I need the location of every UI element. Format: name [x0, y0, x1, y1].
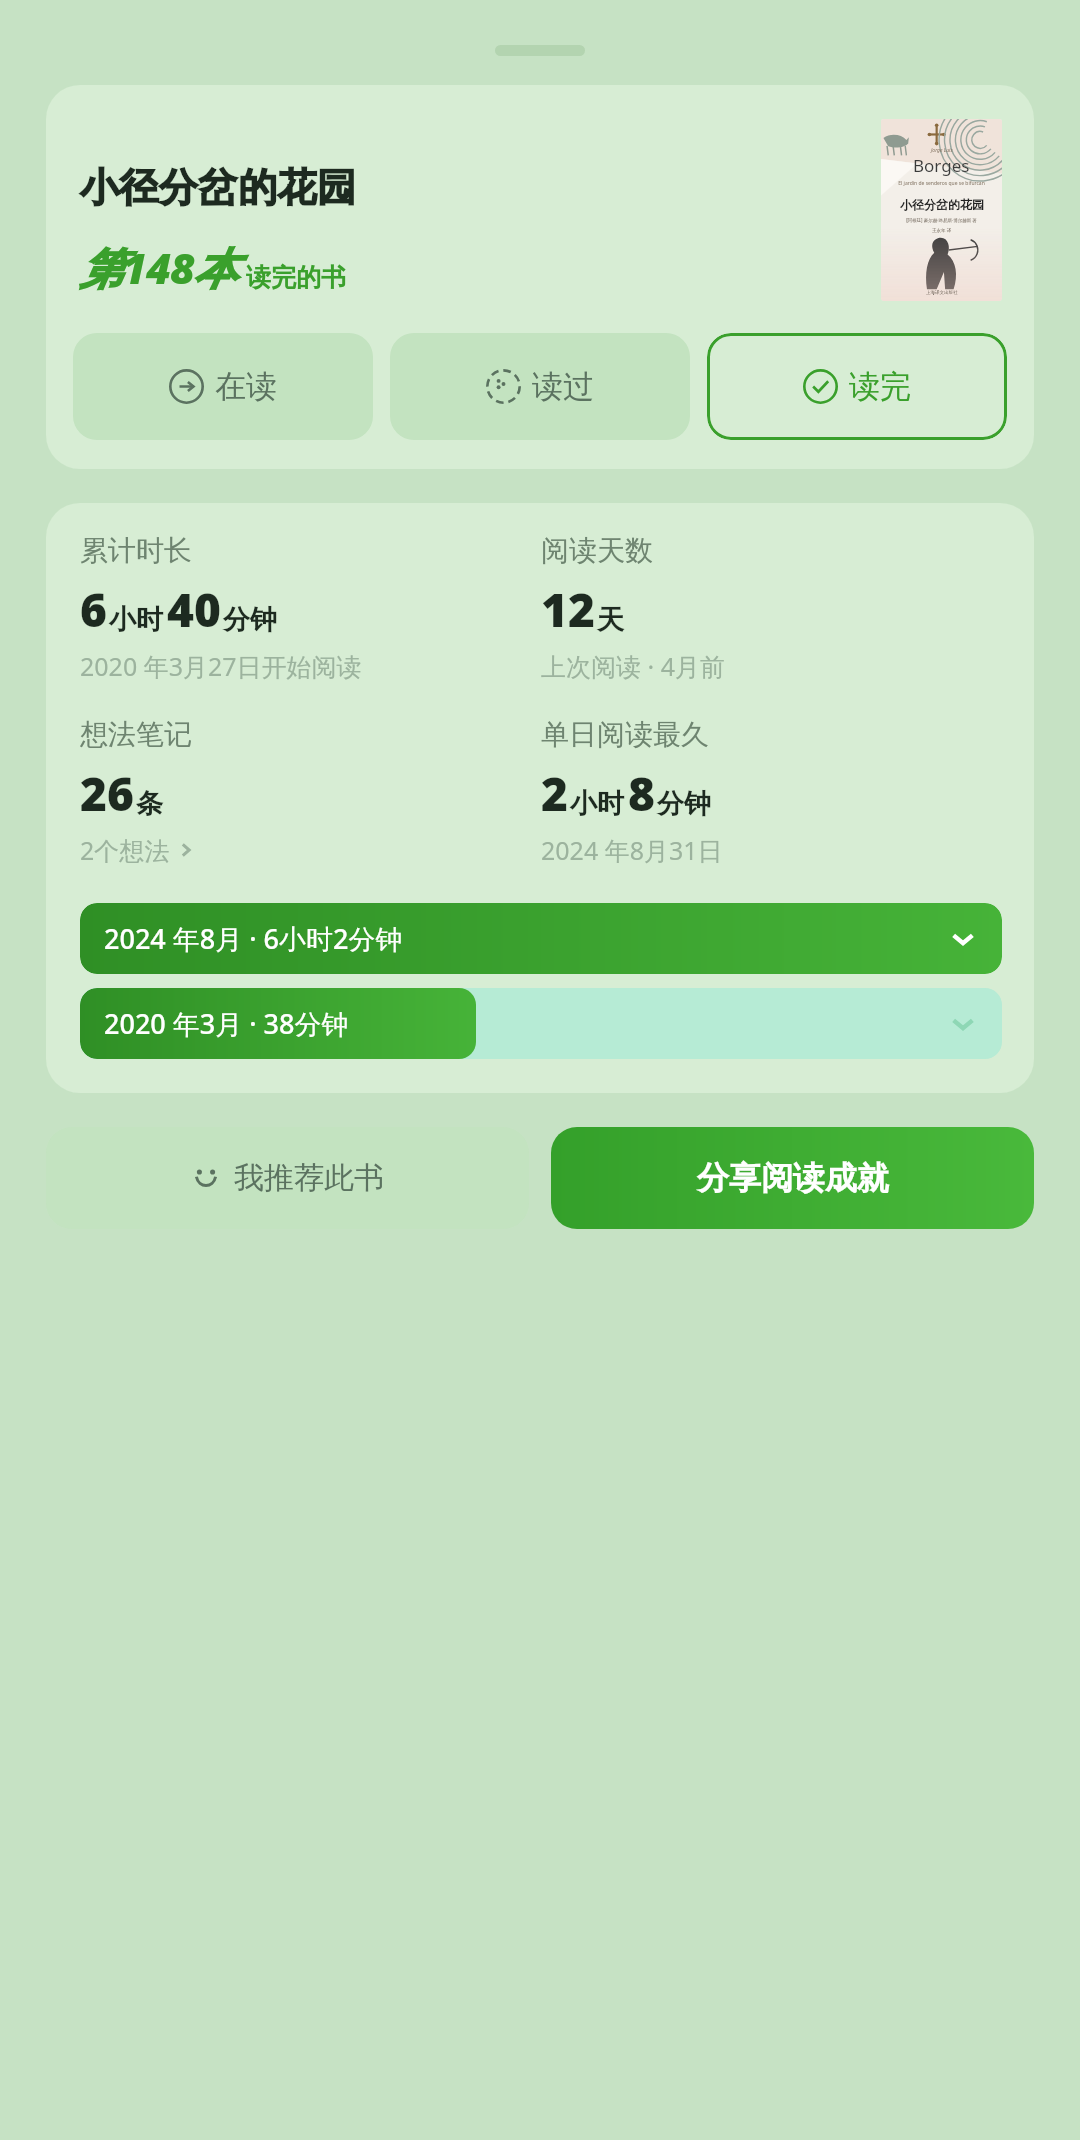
button[interactable]: 读完 — [707, 333, 1007, 440]
staticText: 40 — [167, 578, 221, 641]
staticText: 小时 — [109, 603, 163, 637]
other: 在读 — [169, 369, 204, 404]
button[interactable]: 2024 年8月 · 6小时2分钟 — [80, 903, 1002, 974]
staticText: 2024 年8月31日 — [541, 833, 723, 867]
staticText: 上次阅读 · 4月前 — [541, 649, 726, 683]
staticText: 2020 年3月27日开始阅读 — [80, 649, 362, 683]
staticText: 累计时长 — [80, 533, 192, 568]
other: 读完 — [803, 369, 838, 404]
staticText: 分钟 — [223, 603, 277, 637]
other: 我推荐此书 — [191, 1163, 221, 1193]
staticText: 读完 — [849, 367, 911, 406]
staticText: 上海译文出版社 — [926, 290, 958, 296]
staticText: 12 — [541, 578, 595, 641]
staticText: 条 — [136, 787, 163, 821]
staticText: 2个想法 — [80, 833, 170, 867]
staticText: 小时 — [570, 787, 624, 821]
button[interactable]: 读过 — [390, 333, 690, 440]
staticText: 天 — [597, 603, 624, 637]
staticText: 读完的书 — [246, 262, 346, 293]
staticText: 2 — [541, 762, 568, 825]
button[interactable]: 我推荐此书 — [46, 1127, 529, 1229]
staticText: 26 — [80, 762, 134, 825]
staticText: 王永年 译 — [932, 227, 952, 233]
button[interactable]: 2020 年3月 · 38分钟 — [80, 988, 1002, 1059]
button[interactable]: 分享阅读成就 — [551, 1127, 1034, 1229]
staticText: 阅读天数 — [541, 533, 653, 568]
staticText: Jorge Luis — [931, 147, 953, 154]
staticText: 在读 — [215, 367, 277, 406]
staticText: 2020 年3月 · 38分钟 — [104, 1005, 349, 1042]
staticText: 想法笔记 — [80, 717, 192, 752]
staticText: 6 — [80, 578, 107, 641]
staticText: El jardín de senderos que se bifurcan — [898, 180, 985, 187]
staticText: 2024 年8月 · 6小时2分钟 — [104, 920, 403, 957]
staticText: 单日阅读最久 — [541, 717, 709, 752]
staticText: Borges — [913, 154, 970, 177]
staticText: 第148本 — [80, 238, 236, 297]
staticText: 小径分岔的花园 — [900, 197, 984, 212]
staticText: 8 — [628, 762, 655, 825]
staticText: 分享阅读成就 — [697, 1158, 889, 1198]
staticText: 小径分岔的花园 — [80, 163, 357, 212]
button[interactable]: 在读 — [73, 333, 373, 440]
staticText: 分钟 — [657, 787, 711, 821]
staticText: 我推荐此书 — [234, 1159, 384, 1197]
other: 读过 — [486, 369, 521, 404]
staticText: 读过 — [532, 367, 594, 406]
staticText: [阿根廷] 豪尔赫·路易斯·博尔赫斯 著 — [906, 217, 977, 223]
